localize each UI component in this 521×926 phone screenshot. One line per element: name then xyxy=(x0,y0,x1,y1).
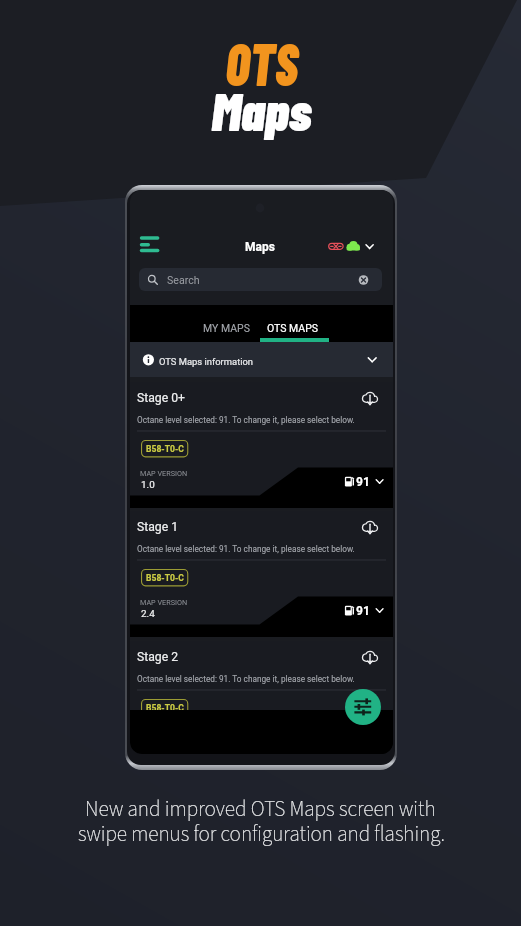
staticText: New and improved OTS Maps screen with xyxy=(85,794,436,824)
staticText: MY MAPS xyxy=(203,322,250,334)
button[interactable]: B58-T0-C xyxy=(141,699,188,716)
staticText: 91 xyxy=(356,475,370,489)
button[interactable]: MY MAPS xyxy=(192,305,261,342)
staticText: Octane level selected: 91. To change it,… xyxy=(137,544,355,554)
staticText: B58-T0-C xyxy=(146,573,184,583)
button[interactable]: Search xyxy=(139,268,382,291)
staticText: swipe menus for configuration and flashi… xyxy=(78,819,445,849)
button[interactable]: Stage 1 xyxy=(130,511,393,637)
staticText: OTS MAPS xyxy=(267,322,319,334)
staticText: Stage 0+ xyxy=(137,391,185,405)
staticText: Octane level selected: 91. To change it,… xyxy=(137,674,355,684)
button[interactable]: B58-T0-C xyxy=(141,440,188,457)
staticText: OTS xyxy=(226,25,298,98)
button[interactable]: Download map xyxy=(358,644,382,668)
button[interactable]: Select octane level xyxy=(340,470,388,494)
button[interactable]: Stage 0+ xyxy=(130,382,393,508)
button[interactable]: OTS Maps information xyxy=(130,342,393,377)
button[interactable]: B58-T0-C xyxy=(141,569,188,586)
staticText: OTS Maps information xyxy=(159,356,254,367)
staticText: 1.0 xyxy=(141,479,155,491)
button[interactable]: OTS MAPS xyxy=(259,305,328,342)
button[interactable]: Device connection status xyxy=(324,232,380,256)
button[interactable]: Clear search xyxy=(358,274,369,286)
staticText: Search xyxy=(167,274,200,286)
staticText: MAP VERSION xyxy=(140,469,188,477)
button[interactable]: Map configuration xyxy=(345,689,381,725)
staticText: Octane level selected: 91. To change it,… xyxy=(137,415,355,425)
button[interactable]: Select octane level xyxy=(340,599,388,623)
button[interactable]: Stage 2 xyxy=(130,641,393,754)
staticText: MAP VERSION xyxy=(140,598,188,606)
staticText: Stage 2 xyxy=(137,650,179,664)
staticText: 91 xyxy=(356,604,370,618)
staticText: B58-T0-C xyxy=(146,703,184,713)
button[interactable]: Download map xyxy=(358,514,382,538)
staticText: B58-T0-C xyxy=(146,444,184,454)
staticText: 2.4 xyxy=(141,608,155,620)
staticText: Maps xyxy=(211,79,312,141)
staticText: Maps xyxy=(245,240,275,254)
staticText: Stage 1 xyxy=(137,520,179,534)
button[interactable]: Download map xyxy=(358,385,382,409)
button[interactable]: Open navigation menu xyxy=(134,230,166,256)
